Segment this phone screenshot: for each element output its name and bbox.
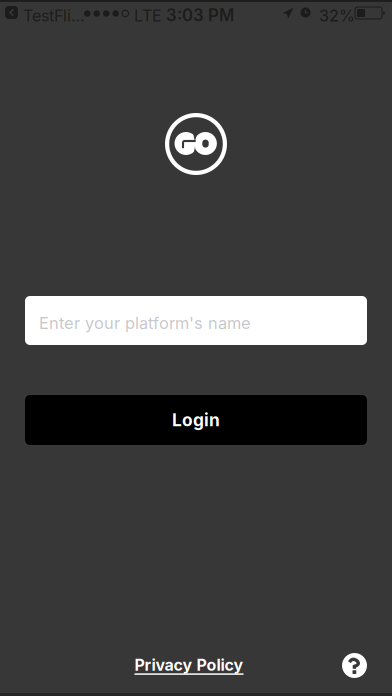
staticText: Privacy Policy <box>134 655 243 675</box>
staticText: Login <box>172 409 220 430</box>
staticText: Enter your platform's name <box>39 313 251 333</box>
button[interactable]: Login <box>25 395 367 445</box>
staticText: 32% <box>319 6 355 25</box>
button[interactable]: Privacy Policy <box>129 652 249 678</box>
staticText: TestFli… <box>23 6 85 25</box>
button[interactable]: Help <box>342 653 367 678</box>
staticText: LTE <box>134 6 162 25</box>
staticText: 3:03 PM <box>166 5 234 25</box>
